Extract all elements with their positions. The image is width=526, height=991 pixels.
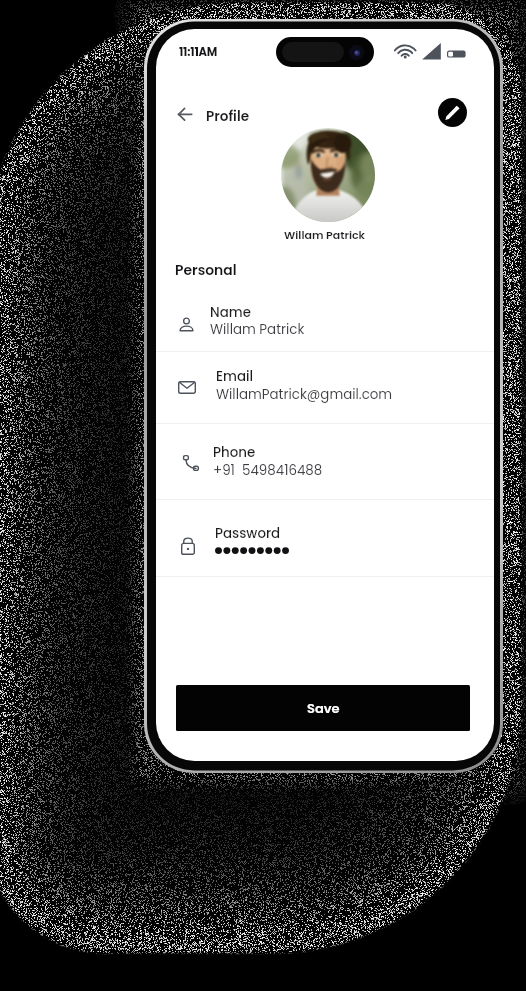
staticText: Phone [213,443,256,462]
button[interactable]: Name [156,283,494,352]
staticText: Email [216,367,254,386]
staticText: +91 5498416488 [213,461,323,480]
staticText: Password [215,524,281,543]
button[interactable]: Password [156,499,494,577]
staticText: Willam Patrick [210,320,305,339]
button[interactable]: Phone [156,424,494,500]
staticText: Willam Patrick [284,227,366,242]
staticText: 11:11AM [179,44,218,60]
button[interactable]: Email [156,352,494,424]
staticText: Personal [175,260,237,279]
button[interactable]: Save [176,685,470,731]
button[interactable]: Back [173,101,199,127]
staticText: WillamPatrick@gmail.com [216,385,393,404]
staticText: Name [210,303,251,322]
staticText: Profile [206,107,250,126]
button[interactable]: Edit profile [438,98,467,127]
staticText: Save [307,699,340,717]
